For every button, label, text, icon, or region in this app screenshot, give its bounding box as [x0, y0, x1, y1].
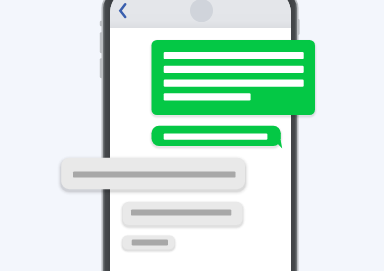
- button[interactable]: Contact profile: [190, 0, 213, 22]
- button[interactable]: Outgoing message: [151, 40, 315, 115]
- button[interactable]: Back: [112, 0, 130, 22]
- button[interactable]: Incoming message: [61, 158, 245, 189]
- button[interactable]: Incoming message: [123, 202, 243, 225]
- button[interactable]: Incoming message: [122, 235, 174, 249]
- button[interactable]: Outgoing message: [151, 126, 281, 148]
